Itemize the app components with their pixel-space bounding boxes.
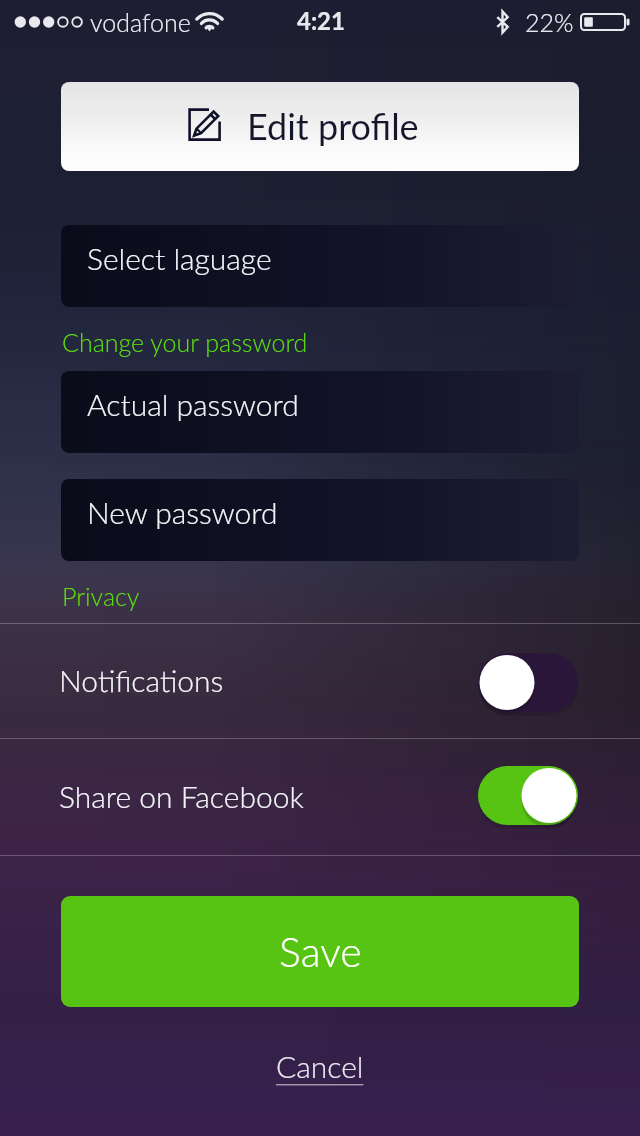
staticText: Edit profile	[247, 104, 419, 147]
button[interactable]: Actual password	[61, 371, 579, 453]
staticText: Privacy	[62, 581, 140, 611]
button[interactable]: Select laguage	[61, 225, 579, 307]
other: Wi-Fi	[196, 11, 223, 32]
other: Battery 22 percent	[580, 13, 630, 32]
button[interactable]: Save	[61, 896, 579, 1007]
staticText: Select laguage	[87, 240, 272, 276]
button[interactable]: Cancel	[276, 1040, 364, 1076]
staticText: New password	[87, 494, 278, 530]
button[interactable]: Notifications	[0, 624, 640, 738]
staticText: Change your password	[62, 327, 308, 357]
other: Switch off	[478, 653, 582, 717]
staticText: 22%	[525, 7, 574, 37]
button[interactable]: Edit profile	[61, 82, 579, 171]
button[interactable]: Share on Facebook	[0, 740, 640, 854]
staticText: Share on Facebook	[59, 778, 304, 814]
other: Bluetooth	[496, 11, 509, 33]
button[interactable]: New password	[61, 479, 579, 561]
other: Switch on	[478, 766, 582, 830]
staticText: 4:21	[297, 6, 345, 35]
staticText: vodafone	[90, 7, 191, 37]
staticText: Notifications	[59, 662, 224, 698]
staticText: Save	[279, 927, 362, 976]
staticText: Actual password	[87, 386, 299, 422]
